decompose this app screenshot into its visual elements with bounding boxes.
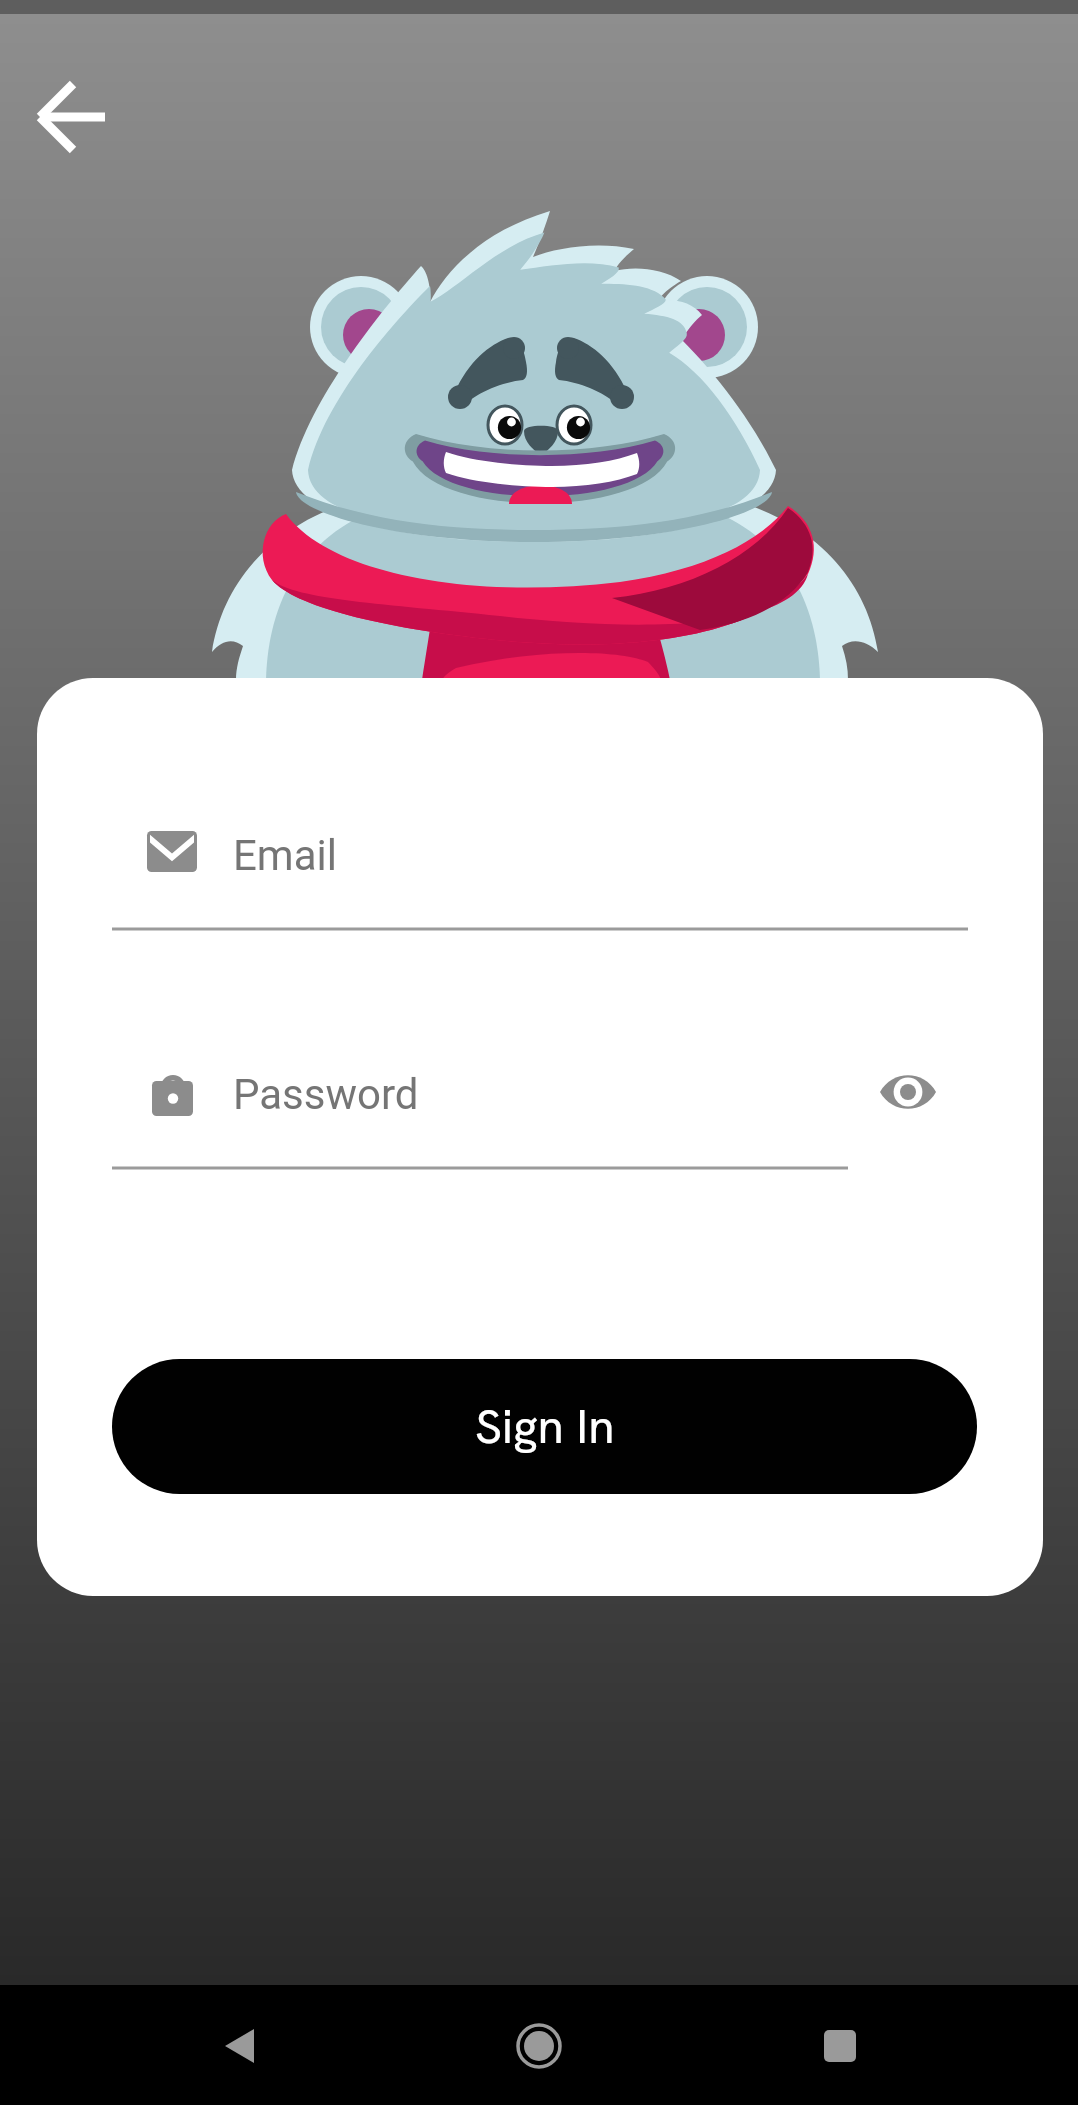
staticText: Password bbox=[233, 1070, 419, 1119]
staticText: Sign In bbox=[475, 1395, 615, 1458]
button[interactable]: Sign In bbox=[112, 1359, 977, 1494]
button[interactable]: Back bbox=[20, 67, 120, 167]
button[interactable]: Show password bbox=[880, 1072, 936, 1112]
staticText: Email bbox=[233, 831, 337, 880]
